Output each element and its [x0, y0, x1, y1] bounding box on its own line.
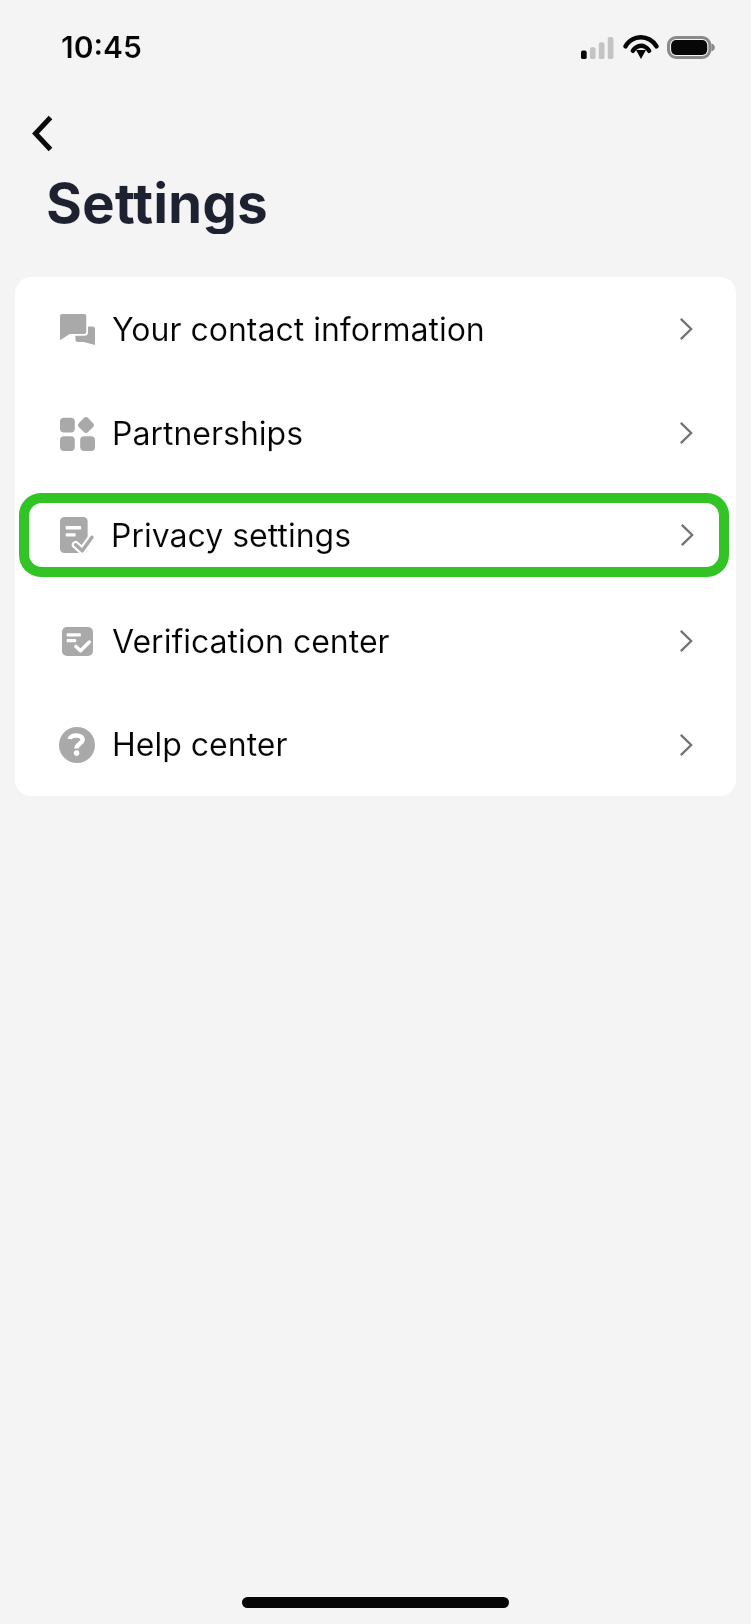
staticText: Your contact information [112, 310, 485, 349]
button[interactable]: Your contact information [15, 277, 736, 381]
staticText: Partnerships [112, 414, 304, 453]
button[interactable]: Partnerships [15, 381, 736, 485]
staticText: Verification center [112, 622, 390, 661]
button[interactable]: Verification center [15, 589, 736, 693]
staticText: Help center [112, 725, 288, 764]
staticText: Privacy settings [111, 516, 352, 555]
button[interactable]: Privacy settings [15, 485, 736, 589]
staticText: 10:45 [61, 29, 142, 65]
button[interactable]: Help center [15, 693, 736, 796]
button[interactable]: Back [11, 91, 75, 175]
staticText: Settings [46, 170, 268, 234]
